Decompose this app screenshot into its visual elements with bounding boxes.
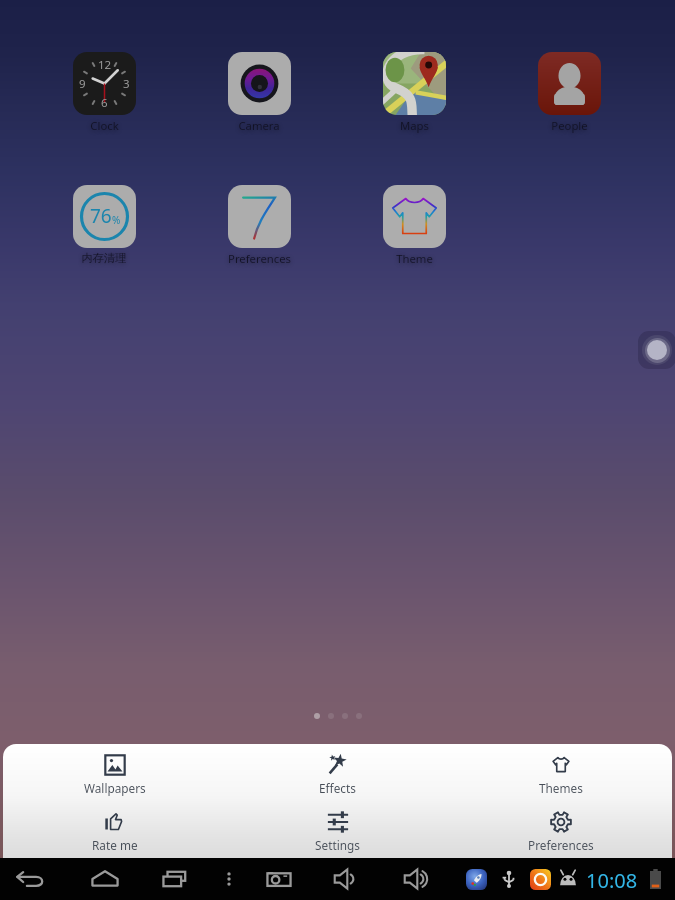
staticText: 12 — [98, 57, 112, 73]
staticText: People — [551, 118, 588, 133]
button[interactable]: 12 — [26, 52, 182, 133]
button[interactable]: Home — [88, 864, 122, 894]
button[interactable]: Preferences — [181, 185, 337, 266]
staticText: Rate me — [92, 837, 138, 853]
button[interactable]: Camera — [181, 52, 337, 133]
staticText: Preferences — [528, 837, 594, 853]
button[interactable]: Quick toggle — [638, 331, 675, 369]
staticText: 10:08 — [586, 867, 638, 894]
staticText: % — [112, 213, 121, 227]
button[interactable]: Volume down — [332, 867, 366, 891]
button[interactable]: Rate me — [3, 801, 226, 853]
staticText: Wallpapers — [84, 780, 146, 796]
button[interactable]: Maps — [336, 52, 492, 133]
staticText: Clock — [90, 118, 119, 133]
staticText: 内存清理 — [81, 251, 127, 265]
button[interactable]: People — [491, 52, 647, 133]
button[interactable]: Settings — [226, 801, 449, 853]
button[interactable]: Effects — [226, 744, 449, 796]
button[interactable]: Preferences — [449, 801, 672, 853]
staticText: 9 — [79, 76, 86, 92]
button[interactable]: Wallpapers — [3, 744, 226, 796]
button[interactable]: Themes — [449, 744, 672, 796]
staticText: 76 — [90, 203, 112, 229]
button[interactable]: Theme — [336, 185, 492, 266]
button[interactable]: 76 — [26, 185, 182, 265]
staticText: Effects — [319, 780, 356, 796]
staticText: Preferences — [228, 251, 291, 266]
staticText: 3 — [123, 76, 130, 92]
button[interactable]: Recent apps — [158, 864, 192, 894]
button[interactable]: Screenshot — [262, 864, 296, 894]
button[interactable]: Volume up — [402, 867, 436, 891]
staticText: Maps — [400, 118, 429, 133]
staticText: 6 — [101, 95, 108, 111]
staticText: Camera — [238, 118, 280, 133]
staticText: Themes — [539, 780, 583, 796]
button[interactable]: Back — [15, 864, 49, 894]
button[interactable]: More options — [212, 864, 246, 894]
staticText: Theme — [396, 251, 433, 266]
staticText: Settings — [315, 837, 360, 853]
